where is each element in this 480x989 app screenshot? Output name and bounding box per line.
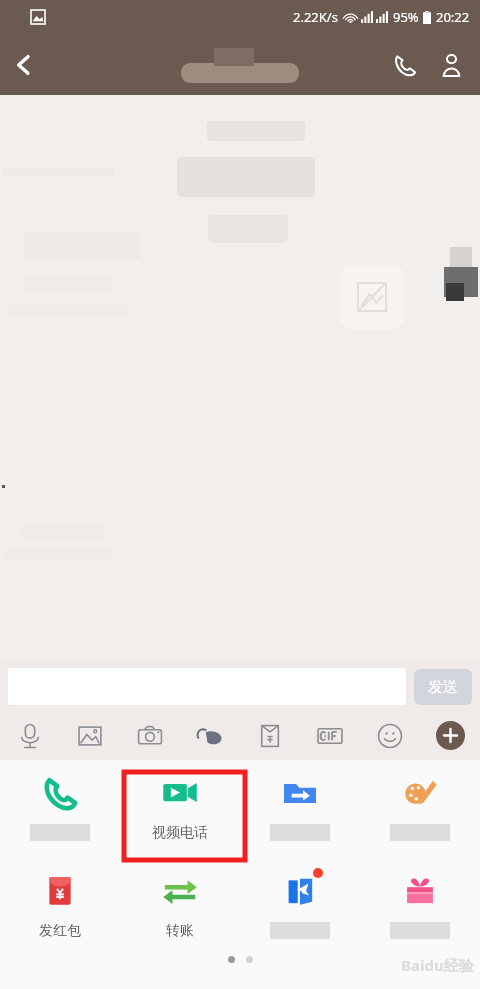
button[interactable]: Action	[360, 760, 480, 858]
button[interactable]: Red packet	[240, 711, 300, 760]
button[interactable]: Action	[240, 858, 360, 956]
staticText: 95%	[393, 8, 419, 26]
staticText: Baidu经验	[401, 955, 474, 975]
button[interactable]: Poke	[180, 711, 240, 760]
button[interactable]: Voice message	[0, 711, 60, 760]
staticText: 2.22K/s	[293, 8, 338, 26]
staticText: 20:22	[436, 8, 470, 26]
staticText: 发送	[428, 678, 458, 697]
staticText: 转账	[166, 922, 194, 940]
button[interactable]: GIF	[300, 711, 360, 760]
button[interactable]: Voice call	[382, 42, 428, 88]
button[interactable]: 发红包	[0, 858, 120, 956]
button[interactable]: Back	[0, 41, 48, 89]
button[interactable]: 发送	[414, 669, 472, 705]
button[interactable]: More	[420, 711, 480, 760]
button[interactable]: Contact profile	[428, 42, 474, 88]
button[interactable]: Action	[360, 858, 480, 956]
button[interactable]: Action	[0, 760, 120, 858]
staticText: 视频电话	[152, 824, 208, 842]
button[interactable]: 转账	[120, 858, 240, 956]
button[interactable]: Camera	[120, 711, 180, 760]
button[interactable]: Emoji	[360, 711, 420, 760]
staticText: 发红包	[39, 922, 81, 940]
button[interactable]: 视频电话	[120, 760, 240, 858]
button[interactable]: Action	[240, 760, 360, 858]
button[interactable]: Photo	[60, 711, 120, 760]
